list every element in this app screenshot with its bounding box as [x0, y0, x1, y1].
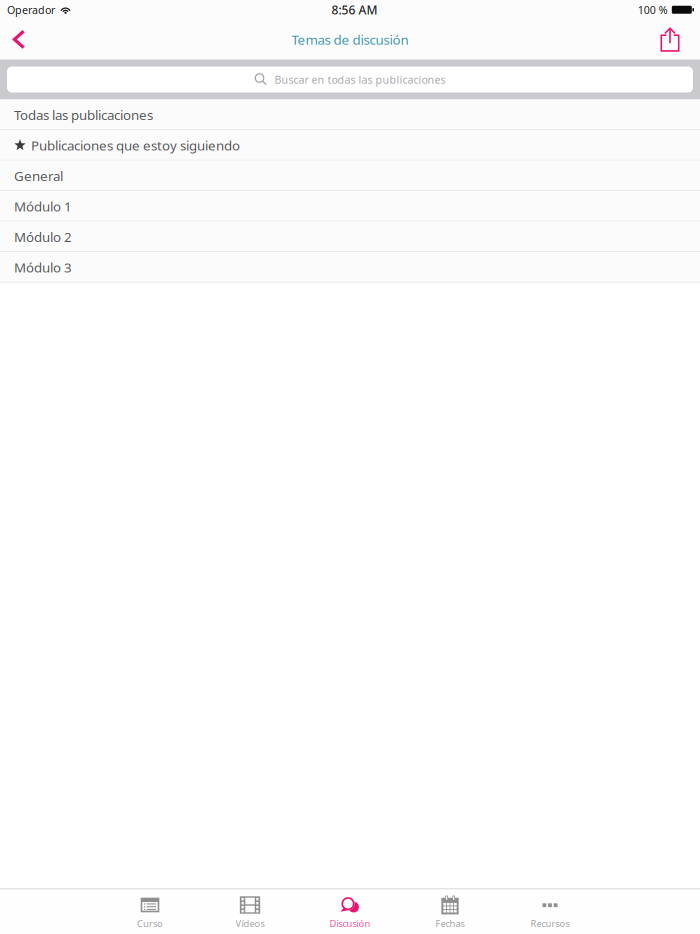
button[interactable]: Share — [651, 19, 689, 59]
button[interactable]: Publicaciones que estoy siguiendo — [0, 130, 700, 160]
staticText: Módulo 2 — [14, 228, 72, 246]
button[interactable]: Buscar en todas las publicaciones — [7, 66, 693, 92]
staticText: Buscar en todas las publicaciones — [274, 72, 445, 87]
staticText: Publicaciones que estoy siguiendo — [31, 136, 240, 154]
button[interactable]: Fechas — [400, 888, 500, 934]
button[interactable]: Módulo 1 — [0, 191, 700, 221]
button[interactable]: Discusión — [300, 888, 400, 934]
button[interactable]: Todas las publicaciones — [0, 99, 700, 130]
staticText: Discusión — [329, 917, 370, 929]
staticText: Recursos — [530, 917, 569, 929]
staticText: Módulo 1 — [14, 197, 72, 215]
staticText: Fechas — [435, 917, 464, 929]
button[interactable]: Vídeos — [200, 888, 300, 934]
staticText: Módulo 3 — [14, 258, 72, 276]
staticText: Curso — [137, 917, 163, 929]
button[interactable]: Módulo 3 — [0, 252, 700, 282]
staticText: General — [14, 167, 63, 185]
button[interactable]: Recursos — [500, 888, 600, 934]
button[interactable]: General — [0, 160, 700, 191]
staticText: 8:56 AM — [331, 2, 377, 18]
staticText: Operador — [7, 3, 55, 17]
button[interactable]: Back — [2, 19, 36, 59]
staticText: 100 % — [638, 3, 668, 17]
staticText: Temas de discusión — [291, 31, 408, 48]
button[interactable]: Curso — [100, 888, 200, 934]
staticText: Vídeos — [235, 917, 264, 929]
staticText: Todas las publicaciones — [14, 106, 153, 124]
button[interactable]: Módulo 2 — [0, 221, 700, 252]
